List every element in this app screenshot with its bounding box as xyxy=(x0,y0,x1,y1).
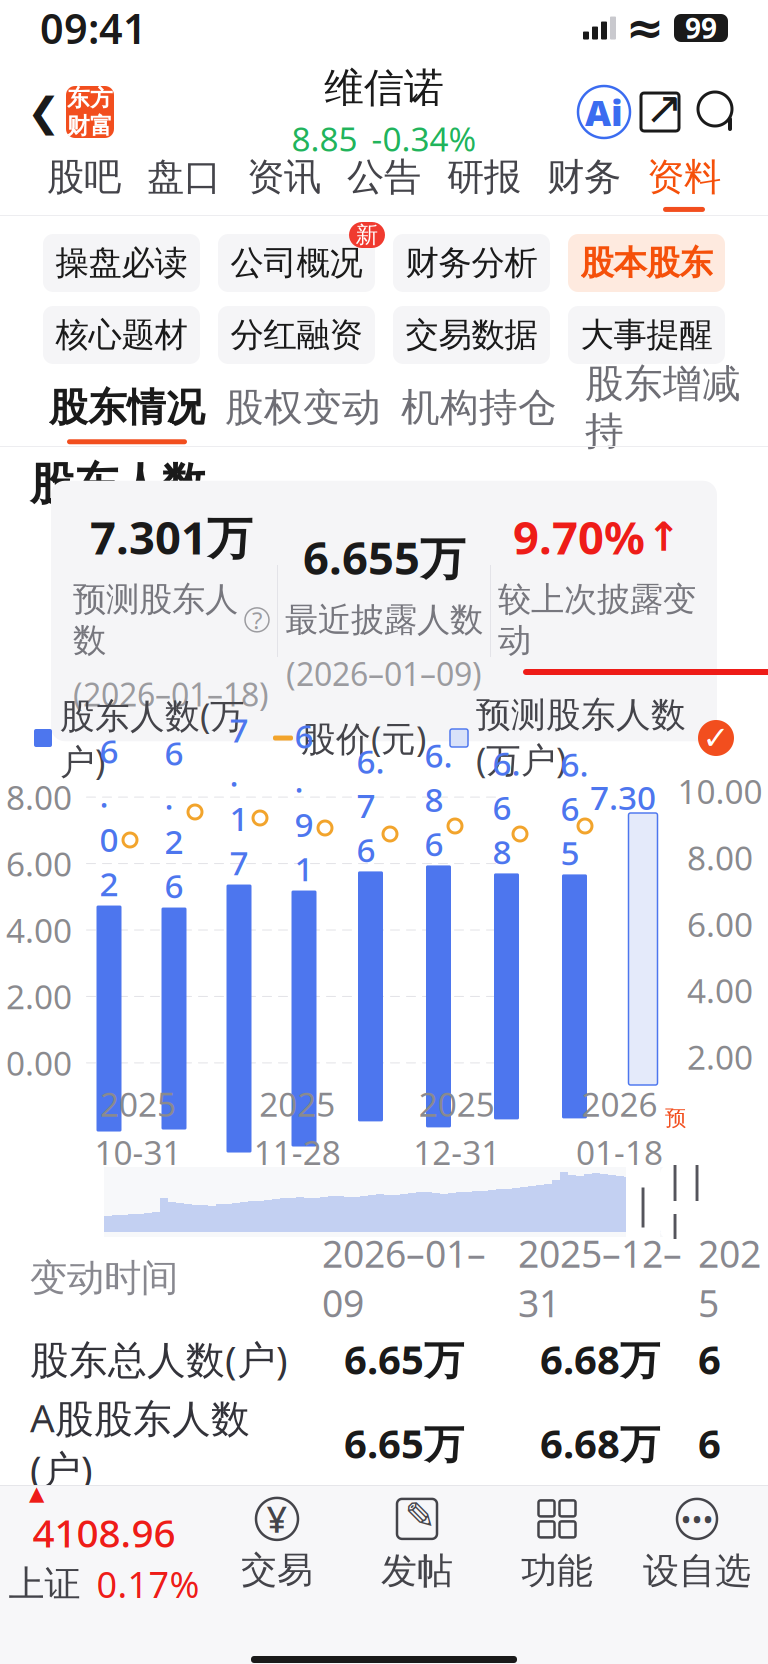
staticText: 研报 xyxy=(447,154,521,200)
button[interactable]: 大事提醒 xyxy=(568,306,725,364)
staticText: 11-28 xyxy=(254,1130,341,1174)
staticText: 8.00 xyxy=(687,835,753,880)
staticText: 2025 xyxy=(259,1082,335,1126)
staticText: 10-31 xyxy=(94,1130,181,1174)
button[interactable]: 资料 xyxy=(634,151,734,215)
staticText: ••• xyxy=(680,1499,713,1538)
staticText: ✎ xyxy=(404,1495,435,1537)
staticText: 7.17 xyxy=(229,707,248,885)
staticText: 09:41 xyxy=(40,1,147,55)
button[interactable]: 东方财富 xyxy=(66,86,114,138)
staticText: (2026–01–09) xyxy=(286,652,482,695)
staticText: 预 xyxy=(665,1105,686,1131)
staticText: 2025 xyxy=(100,1082,176,1126)
staticText: 股权变动 xyxy=(225,384,381,431)
button[interactable]: 资讯 xyxy=(234,151,334,215)
button[interactable]: 股权变动 xyxy=(215,382,391,446)
staticText: 6.65万 xyxy=(344,1332,464,1385)
button[interactable]: 财务 xyxy=(534,151,634,215)
staticText: 维信诺 xyxy=(324,63,444,112)
staticText: 6.02 xyxy=(99,728,118,906)
button[interactable]: 返回 xyxy=(22,82,66,142)
staticText: 99 xyxy=(685,9,717,47)
staticText: 股东情况 xyxy=(49,384,205,431)
staticText: ||| xyxy=(664,1149,708,1255)
staticText: 操盘必读 xyxy=(55,242,187,283)
button[interactable]: 操盘必读 xyxy=(43,234,200,292)
button[interactable]: 确认图例 xyxy=(698,720,734,756)
button[interactable]: 股吧 xyxy=(34,151,134,215)
staticText: 6.68万 xyxy=(540,1416,660,1469)
staticText: 6.655万 xyxy=(303,527,465,587)
button[interactable]: 盘口 xyxy=(134,151,234,215)
button[interactable]: AI 助手 xyxy=(578,86,630,138)
button[interactable]: 股东情况 xyxy=(39,382,215,446)
staticText: ✓ xyxy=(702,720,729,756)
staticText: 6 xyxy=(698,1416,721,1469)
staticText: 6 xyxy=(698,1332,721,1385)
staticText: 股东人数 xyxy=(30,457,206,511)
button[interactable]: 股东增减持 xyxy=(567,382,759,446)
button[interactable]: 核心题材 xyxy=(43,306,200,364)
staticText: 财务 xyxy=(547,154,621,200)
button[interactable]: 研报 xyxy=(434,151,534,215)
staticText: 机构持仓 xyxy=(401,384,557,431)
staticText: 股东总人数(户) xyxy=(30,1333,288,1385)
staticText: Ai xyxy=(585,88,623,136)
staticText: 预测股东人数 xyxy=(73,579,238,661)
staticText: 上证 xyxy=(8,1562,80,1606)
button[interactable]: 公司概况 xyxy=(218,234,375,292)
staticText: 2026–01–09 xyxy=(322,1228,486,1328)
staticText: 变动时间 xyxy=(30,1255,178,1301)
button[interactable]: ▲ xyxy=(1,1486,207,1604)
button[interactable]: 财务分析 xyxy=(393,234,550,292)
staticText: (2026–01–18) xyxy=(73,673,269,715)
staticText: 0.17% xyxy=(96,1560,199,1608)
button[interactable]: 机构持仓 xyxy=(391,382,567,446)
staticText: 公司概况 xyxy=(230,242,362,283)
staticText: 预测股东人数(万户) xyxy=(476,694,686,782)
staticText: 2026 xyxy=(581,1082,657,1126)
staticText: 交易 xyxy=(241,1548,313,1592)
button[interactable]: ¥ xyxy=(207,1486,347,1604)
staticText: ▲ xyxy=(29,1482,44,1505)
staticText: 9.70% xyxy=(513,507,645,567)
button[interactable]: ✎ xyxy=(347,1486,487,1604)
staticText: ≈ xyxy=(626,2,664,54)
staticText: 2.00 xyxy=(6,974,72,1019)
staticText: A股股东人数(户) xyxy=(30,1392,250,1494)
staticText: 东方 xyxy=(67,84,113,112)
staticText: 12-31 xyxy=(413,1130,500,1174)
staticText: 功能 xyxy=(521,1549,593,1593)
staticText: 8.00 xyxy=(6,775,72,819)
staticText: | xyxy=(632,1175,654,1228)
staticText: 2025 xyxy=(419,1082,495,1126)
staticText: 6.00 xyxy=(687,902,753,946)
button[interactable]: 股本股东 xyxy=(568,234,725,292)
staticText: 资料 xyxy=(647,154,721,200)
staticText: 6.86 xyxy=(424,733,452,865)
button[interactable]: 分享 xyxy=(630,84,690,140)
staticText: 分红融资 xyxy=(230,314,362,355)
button[interactable]: 功能 xyxy=(487,1486,627,1604)
staticText: 资讯 xyxy=(247,154,321,200)
staticText: 交易数据 xyxy=(405,314,537,355)
staticText: 6.65万 xyxy=(344,1416,464,1469)
staticText: 6.68 xyxy=(492,741,520,873)
staticText: 10.00 xyxy=(677,769,762,813)
staticText: 7.301万 xyxy=(90,507,252,567)
button[interactable]: 分红融资 xyxy=(218,306,375,364)
button[interactable]: 交易数据 xyxy=(393,306,550,364)
staticText: 2025 xyxy=(698,1228,761,1328)
staticText: 财务分析 xyxy=(405,242,537,283)
staticText: 7.30 xyxy=(590,775,656,819)
button[interactable]: 公告 xyxy=(334,151,434,215)
button[interactable]: 搜索 xyxy=(690,84,746,140)
staticText: 公告 xyxy=(347,154,421,200)
staticText: ¥ xyxy=(266,1495,287,1543)
staticText: 0.00 xyxy=(6,1041,72,1085)
button[interactable]: ••• xyxy=(627,1486,767,1604)
staticText: 6.26 xyxy=(164,730,183,908)
staticText: 6.68万 xyxy=(540,1332,660,1385)
staticText: 01-18 xyxy=(576,1130,663,1174)
